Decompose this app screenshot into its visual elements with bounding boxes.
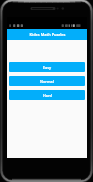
- button[interactable]: Hard: [9, 90, 85, 100]
- button[interactable]: Easy: [9, 62, 85, 72]
- staticText: Normal: [40, 79, 54, 84]
- button[interactable]: Normal: [9, 76, 85, 86]
- staticText: Hard: [43, 93, 52, 98]
- staticText: Kides Math Puzzles: [29, 32, 66, 37]
- staticText: Easy: [43, 65, 52, 70]
